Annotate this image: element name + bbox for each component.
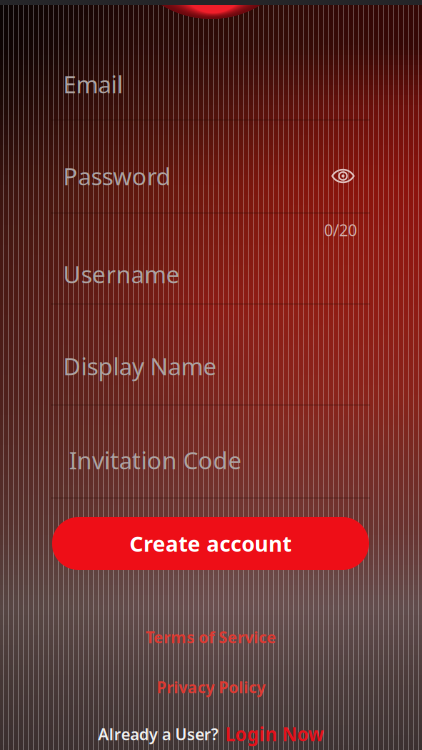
staticText: Terms of Service [145,626,276,648]
staticText: Already a User? [98,723,218,745]
button[interactable]: Terms of Service [101,622,321,652]
staticText: 0/20 [324,219,357,241]
staticText: Login Now [225,722,324,746]
staticText: Display Name [63,350,217,382]
staticText: Password [63,160,171,192]
button[interactable]: Privacy Policy [101,672,321,702]
staticText: Create account [129,529,291,558]
button[interactable]: Login Now [225,722,324,746]
button[interactable]: Create account [52,517,369,570]
staticText: Invitation Code [69,444,242,476]
button[interactable]: Show password [323,157,363,195]
staticText: Email [63,68,123,100]
staticText: Privacy Policy [156,676,265,698]
staticText: Username [63,258,180,290]
